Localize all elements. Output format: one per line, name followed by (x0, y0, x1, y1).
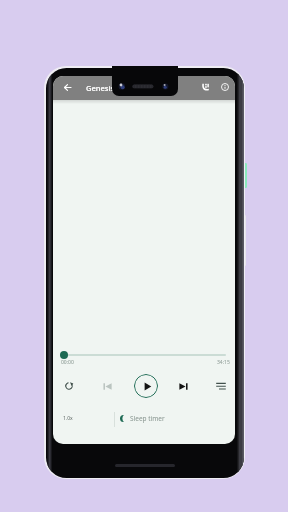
button[interactable]: Next (173, 376, 193, 396)
button[interactable]: Info (215, 77, 235, 97)
button[interactable]: Play (134, 374, 158, 398)
button[interactable]: Back (57, 77, 77, 97)
staticText: 00:00 (61, 359, 74, 366)
staticText: 1.0x (63, 415, 73, 422)
button[interactable]: 1.0x (53, 407, 83, 429)
button[interactable]: Previous (97, 376, 117, 396)
button[interactable]: Sleep timer (115, 407, 235, 429)
button[interactable]: Queue (211, 376, 231, 396)
staticText: Genesis (86, 83, 115, 93)
staticText: 34:15 (217, 359, 230, 366)
button[interactable]: Replay 10 seconds (59, 376, 79, 396)
button[interactable]: Cast to device (195, 77, 215, 97)
staticText: Sleep timer (130, 414, 165, 423)
